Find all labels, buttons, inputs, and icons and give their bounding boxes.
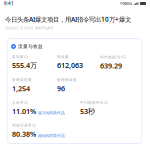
staticText: 平均阅读时长: [80, 100, 104, 105]
staticText: 11.01%: [12, 106, 36, 116]
staticText: 新增阅读量: [57, 78, 77, 82]
staticText: 阅读完成率: [12, 123, 32, 128]
staticText: 96: [57, 83, 65, 93]
staticText: 阅读量: [57, 54, 69, 59]
staticText: 点击率: [12, 100, 24, 105]
staticText: 1,254: [12, 83, 30, 93]
staticText: 今日头条AI爆文项目，用AI指令写出10万+爆文: [5, 15, 131, 24]
staticText: 2024-07-18 09:24 发布于头条号: [5, 26, 53, 30]
staticText: 新增展现量: [12, 78, 32, 82]
staticText: 流量与收益: [18, 43, 43, 49]
staticText: 创作收益(元): [100, 54, 122, 59]
staticText: 53秒: [80, 106, 95, 116]
staticText: 555.4万: [12, 60, 37, 70]
staticText: 639.29: [100, 61, 122, 71]
staticText: 612,063: [57, 60, 83, 70]
staticText: 展现量: [12, 54, 24, 59]
staticText: 超70%同类作品: [38, 110, 65, 115]
staticText: 80.38%: [12, 129, 36, 139]
staticText: 9:41: [4, 0, 14, 7]
staticText: 超84%同类作品: [38, 133, 65, 138]
staticText: 中国移动: [120, 1, 132, 6]
